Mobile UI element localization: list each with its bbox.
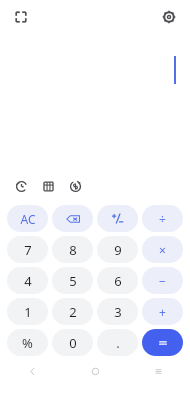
button[interactable]: Backspace <box>52 205 93 232</box>
button[interactable]: Collapse <box>9 5 33 29</box>
button[interactable]: Equals <box>142 329 183 356</box>
button[interactable]: 4 <box>7 267 48 294</box>
staticText: × <box>159 242 166 258</box>
button[interactable]: 9 <box>97 236 138 263</box>
staticText: 8 <box>69 241 77 259</box>
button[interactable]: Settings <box>157 5 181 29</box>
staticText: ÷ <box>159 211 166 227</box>
staticText: 6 <box>114 272 122 290</box>
button[interactable]: ÷ <box>142 205 183 232</box>
button[interactable]: 1 <box>7 298 48 325</box>
staticText: % <box>22 334 33 352</box>
button[interactable]: + <box>142 298 183 325</box>
staticText: + <box>159 304 166 320</box>
staticText: 7 <box>24 241 32 259</box>
staticText: 4 <box>24 272 32 290</box>
staticText: 1 <box>24 303 32 321</box>
button[interactable]: History <box>11 176 31 196</box>
button[interactable]: 8 <box>52 236 93 263</box>
button[interactable]: Home <box>64 361 127 381</box>
staticText: AC <box>20 211 36 227</box>
button[interactable]: % <box>7 329 48 356</box>
staticText: − <box>159 273 166 289</box>
staticText: . <box>116 334 120 352</box>
button[interactable]: 3 <box>97 298 138 325</box>
button[interactable]: 7 <box>7 236 48 263</box>
button[interactable]: 5 <box>52 267 93 294</box>
button[interactable]: × <box>142 236 183 263</box>
staticText: 0 <box>69 334 77 352</box>
button[interactable]: Toggle sign <box>97 205 138 232</box>
button[interactable]: Unit converter <box>65 176 85 196</box>
button[interactable]: 2 <box>52 298 93 325</box>
staticText: 3 <box>114 303 122 321</box>
staticText: 2 <box>69 303 77 321</box>
button[interactable]: Recents <box>127 361 190 381</box>
button[interactable]: AC <box>7 205 48 232</box>
button[interactable]: − <box>142 267 183 294</box>
button[interactable]: Back <box>0 361 64 381</box>
button[interactable]: . <box>97 329 138 356</box>
button[interactable]: Table <box>38 176 58 196</box>
button[interactable]: 0 <box>52 329 93 356</box>
staticText: 9 <box>114 241 122 259</box>
button[interactable]: 6 <box>97 267 138 294</box>
staticText: 5 <box>69 272 77 290</box>
